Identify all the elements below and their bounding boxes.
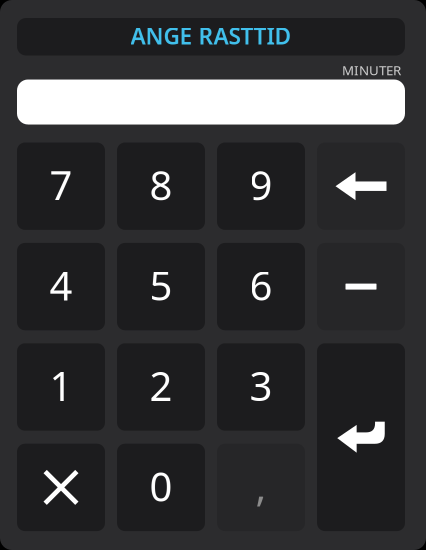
staticText: 6: [249, 258, 272, 312]
button[interactable]: 2: [117, 343, 205, 431]
button[interactable]: 3: [217, 343, 305, 431]
button[interactable]: Backspace: [317, 142, 405, 230]
staticText: 4: [49, 258, 72, 312]
button[interactable]: Minus: [317, 243, 405, 330]
button[interactable]: 8: [117, 142, 205, 230]
staticText: ANGE RASTTID: [130, 21, 291, 51]
button[interactable]: 0: [117, 444, 205, 531]
staticText: 8: [149, 158, 172, 211]
staticText: MINUTER: [342, 61, 401, 79]
button[interactable]: ANGE RASTTID: [17, 18, 405, 55]
button[interactable]: Enter: [317, 343, 405, 531]
button[interactable]: Minutes input: [17, 79, 405, 124]
button[interactable]: 7: [17, 142, 105, 230]
staticText: 5: [149, 258, 172, 312]
button[interactable]: Clear: [17, 444, 105, 531]
button[interactable]: 1: [17, 343, 105, 431]
button[interactable]: 5: [117, 243, 205, 330]
button[interactable]: ,: [217, 444, 305, 531]
staticText: 9: [249, 158, 272, 211]
staticText: 1: [49, 359, 72, 412]
button[interactable]: 6: [217, 243, 305, 330]
staticText: 2: [149, 359, 172, 412]
staticText: 0: [149, 459, 172, 512]
staticText: 3: [249, 359, 272, 412]
button[interactable]: 4: [17, 243, 105, 330]
staticText: 7: [49, 158, 72, 211]
button[interactable]: 9: [217, 142, 305, 230]
staticText: ,: [255, 459, 266, 512]
